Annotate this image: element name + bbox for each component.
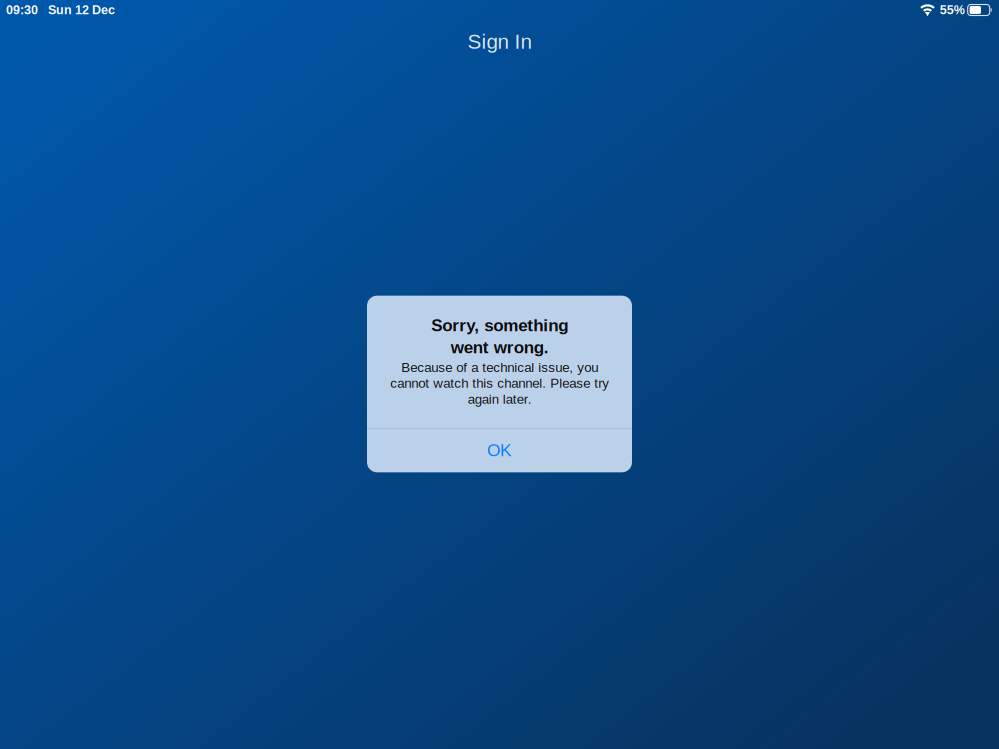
staticText: 09:30 (6, 3, 38, 17)
staticText: 55% (940, 3, 965, 17)
staticText: Sign In (467, 30, 531, 53)
button[interactable]: OK (367, 430, 632, 472)
staticText: Sun 12 Dec (48, 3, 115, 17)
staticText: OK (487, 441, 512, 460)
staticText: Sorry, something went wrong. (431, 316, 568, 357)
staticText: Because of a technical issue, you cannot… (390, 360, 609, 406)
